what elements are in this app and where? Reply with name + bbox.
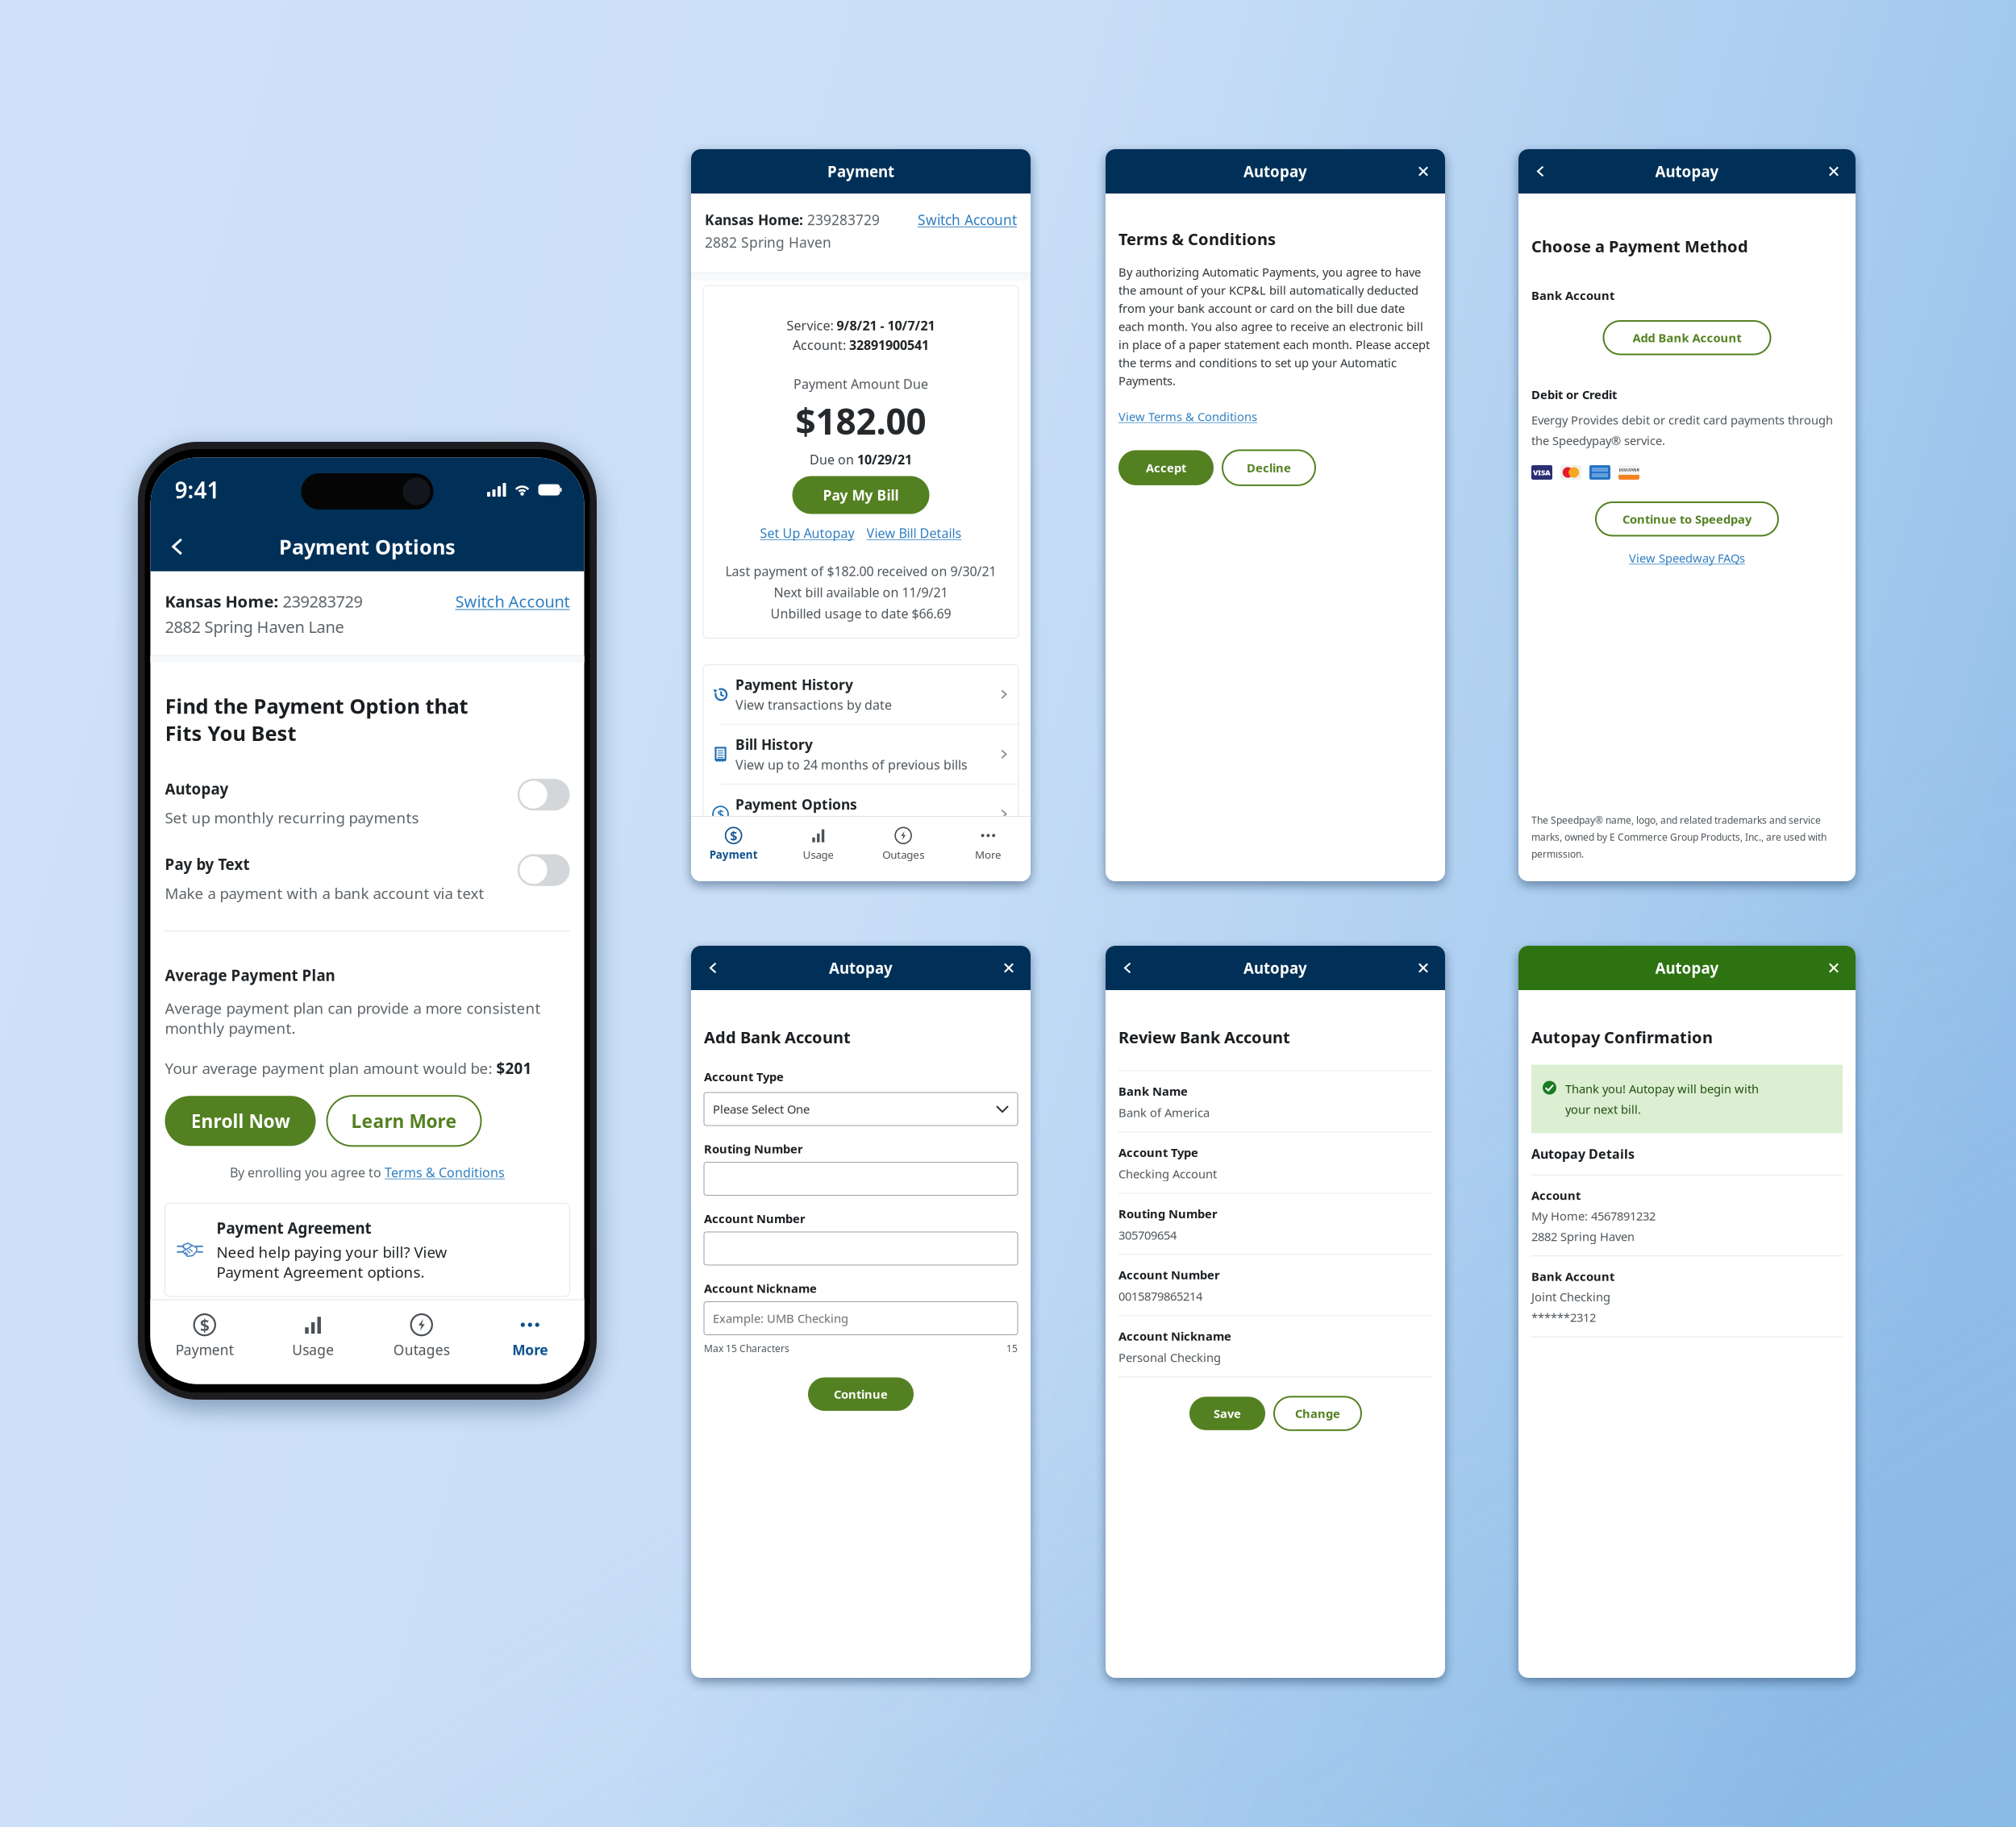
staticText: Terms & Conditions: [385, 1164, 505, 1181]
button[interactable]: Autopay toggle: [517, 779, 570, 811]
staticText: Save: [1214, 1406, 1241, 1421]
staticText: Account Type: [1118, 1144, 1198, 1160]
button[interactable]: View Speedway FAQs: [1629, 550, 1745, 566]
staticText: Account Number: [704, 1211, 806, 1226]
button[interactable]: Back: [1527, 159, 1554, 184]
staticText: Payment History: [735, 675, 853, 694]
button[interactable]: Please Select One: [704, 1092, 1018, 1126]
staticText: DISCOVER: [1619, 467, 1639, 472]
button[interactable]: Back: [700, 955, 727, 981]
staticText: 10/29/21: [857, 451, 912, 468]
staticText: By enrolling you agree to: [230, 1164, 385, 1181]
staticText: Switch Account: [918, 210, 1017, 229]
staticText: $: [717, 806, 724, 822]
staticText: Thank you! Autopay will begin with your …: [1565, 1081, 1759, 1117]
staticText: Continue: [834, 1386, 888, 1402]
button[interactable]: Add Bank Account: [1604, 321, 1770, 354]
button[interactable]: Continue to Speedpay: [1596, 502, 1778, 536]
staticText: Bank Name: [1118, 1083, 1188, 1099]
staticText: Joint Checking: [1531, 1289, 1610, 1305]
staticText: Bank Account: [1531, 288, 1614, 303]
staticText: Usage: [292, 1340, 334, 1359]
button[interactable]: Payment Agreement: [165, 1203, 570, 1296]
button[interactable]: More: [946, 827, 1031, 868]
staticText: 239283729: [807, 210, 880, 229]
button[interactable]: Save: [1189, 1397, 1265, 1430]
staticText: Outages: [393, 1340, 450, 1359]
staticText: More: [975, 847, 1001, 862]
staticText: Payment: [709, 847, 758, 862]
staticText: Autopay: [1655, 161, 1719, 181]
staticText: Payment Amount Due: [793, 375, 928, 392]
button[interactable]: Change: [1274, 1397, 1361, 1430]
staticText: Change: [1295, 1406, 1340, 1421]
staticText: Autopay: [1243, 958, 1307, 978]
button[interactable]: Payment History: [703, 665, 1018, 724]
button[interactable]: $: [703, 784, 1018, 844]
button[interactable]: Switch Account: [455, 591, 570, 612]
staticText: Find the Payment Option that Fits You Be…: [165, 692, 468, 747]
staticText: Account Number: [1118, 1267, 1220, 1283]
staticText: Next bill available on 11/9/21: [774, 584, 948, 601]
button[interactable]: Terms & Conditions: [385, 1164, 505, 1181]
staticText: Unbilled usage to date $66.69: [771, 605, 951, 622]
button[interactable]: Close: [1821, 956, 1847, 980]
button[interactable]: View Bill Details: [866, 524, 962, 542]
button[interactable]: Bill History: [703, 725, 1018, 784]
button[interactable]: Outages: [861, 827, 946, 868]
button[interactable]: Continue: [808, 1377, 914, 1411]
staticText: Payment Options: [279, 533, 456, 560]
staticText: View Bill Details: [866, 524, 962, 542]
button[interactable]: Outages: [367, 1314, 476, 1367]
button[interactable]: Decline: [1223, 450, 1315, 485]
staticText: Debit or Credit: [1531, 387, 1617, 402]
staticText: $: [200, 1313, 210, 1336]
staticText: $182.00: [796, 397, 926, 444]
staticText: Switch Account: [455, 591, 570, 612]
staticText: Kansas Home:: [165, 591, 283, 612]
staticText: Kansas Home:: [705, 210, 807, 229]
staticText: Average payment plan can provide a more …: [165, 998, 541, 1038]
staticText: Bill History: [735, 735, 813, 754]
button[interactable]: View Terms & Conditions: [1118, 409, 1257, 424]
button[interactable]: Pay by Text toggle: [517, 854, 570, 886]
staticText: 2882 Spring Haven Lane: [165, 616, 344, 638]
button[interactable]: Switch Account: [918, 210, 1017, 229]
staticText: Decline: [1247, 460, 1291, 476]
staticText: By authorizing Automatic Payments, you a…: [1118, 264, 1430, 389]
button[interactable]: More: [476, 1314, 584, 1367]
staticText: View bill payment options: [735, 816, 893, 833]
staticText: 0015879865214: [1118, 1288, 1202, 1304]
button[interactable]: Close: [1821, 159, 1847, 183]
button[interactable]: $: [150, 1314, 259, 1367]
button[interactable]: Learn More: [327, 1096, 481, 1146]
button[interactable]: Close: [996, 956, 1022, 980]
button[interactable]: Pay My Bill: [792, 476, 929, 514]
staticText: View Terms & Conditions: [1118, 409, 1257, 424]
button[interactable]: $: [691, 827, 776, 868]
staticText: 9:41: [175, 475, 220, 505]
button[interactable]: Set Up Autopay: [760, 524, 854, 542]
staticText: 2882 Spring Haven: [1531, 1229, 1635, 1244]
staticText: Account Nickname: [1118, 1328, 1231, 1344]
staticText: Your average payment plan amount would b…: [165, 1058, 496, 1078]
staticText: Add Bank Account: [704, 1026, 851, 1048]
staticText: Payment: [176, 1340, 234, 1359]
staticText: View up to 24 months of previous bills: [735, 756, 968, 773]
staticText: Add Bank Account: [1633, 330, 1741, 345]
button[interactable]: Usage: [259, 1314, 367, 1367]
button[interactable]: Usage: [776, 827, 861, 868]
button[interactable]: Close: [1410, 956, 1436, 980]
button[interactable]: Back: [157, 531, 199, 563]
button[interactable]: Back: [1114, 955, 1141, 981]
staticText: Pay by Text: [165, 854, 250, 874]
staticText: Autopay Confirmation: [1531, 1026, 1713, 1048]
button[interactable]: Accept: [1118, 450, 1214, 485]
button[interactable]: Enroll Now: [165, 1096, 316, 1146]
button[interactable]: Close: [1410, 159, 1436, 183]
staticText: Personal Checking: [1118, 1350, 1221, 1365]
staticText: Autopay: [1655, 958, 1719, 978]
staticText: Set up monthly recurring payments: [165, 808, 419, 828]
